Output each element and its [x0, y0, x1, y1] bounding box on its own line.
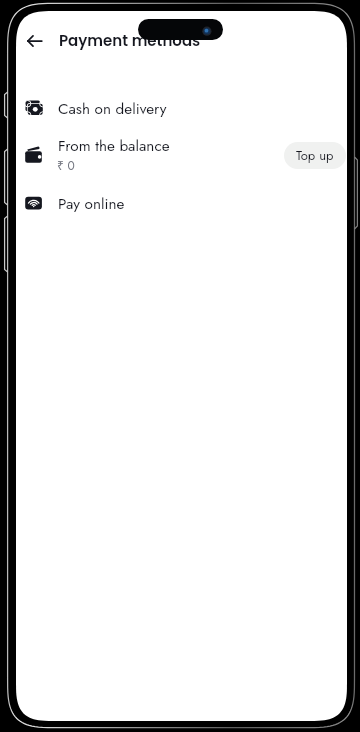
staticText: Top up: [296, 146, 334, 165]
button[interactable]: Back: [18, 28, 50, 54]
button[interactable]: [16, 133, 347, 177]
button[interactable]: Top up: [284, 142, 346, 169]
staticText: Payment methods: [59, 30, 201, 51]
staticText: Pay online: [58, 193, 125, 215]
staticText: Cash on delivery: [58, 98, 167, 120]
button[interactable]: [16, 86, 347, 130]
staticText: From the balance: [58, 135, 170, 157]
button[interactable]: [16, 181, 347, 225]
staticText: ₹ 0: [57, 157, 75, 174]
